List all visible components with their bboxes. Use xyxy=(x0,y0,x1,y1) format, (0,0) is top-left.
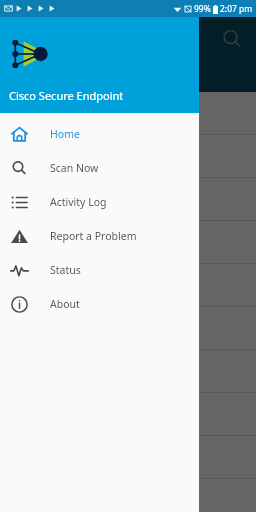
button[interactable]: Status xyxy=(0,253,199,287)
button[interactable] xyxy=(0,307,256,349)
staticText: Status xyxy=(50,263,81,277)
staticText: Report a Problem xyxy=(50,229,137,243)
button[interactable] xyxy=(0,92,256,134)
staticText: About xyxy=(50,297,80,311)
button[interactable]: Scan Now xyxy=(0,151,199,185)
button[interactable]: About xyxy=(0,287,199,321)
button[interactable]: Report a Problem xyxy=(0,219,199,253)
button[interactable] xyxy=(0,436,256,478)
staticText: 99% xyxy=(194,3,211,15)
button[interactable] xyxy=(0,350,256,392)
button[interactable]: Home xyxy=(0,117,199,151)
button[interactable] xyxy=(0,479,256,512)
staticText: Cisco Secure Endpoint xyxy=(9,88,124,103)
button[interactable]: Activity Log xyxy=(0,185,199,219)
button[interactable]: Search xyxy=(220,27,244,51)
button[interactable] xyxy=(0,393,256,435)
staticText: 2:07 pm xyxy=(220,3,253,15)
button[interactable] xyxy=(0,178,256,220)
staticText: Home xyxy=(50,127,80,141)
staticText: Scan Now xyxy=(50,161,99,175)
button[interactable] xyxy=(0,221,256,263)
button[interactable] xyxy=(0,264,256,306)
button[interactable] xyxy=(0,135,256,177)
staticText: Activity Log xyxy=(50,195,107,209)
